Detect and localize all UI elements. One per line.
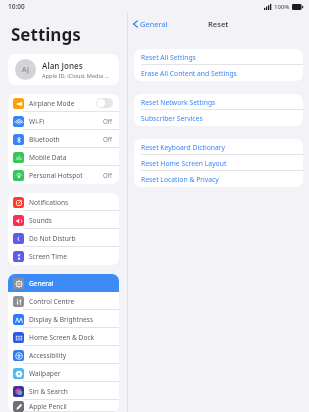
staticText: Erase All Content and Settings: [141, 69, 237, 78]
staticText: Display & Brightness: [29, 315, 113, 324]
staticText: Subscriber Services: [141, 114, 203, 123]
button[interactable]: Subscriber Services: [134, 110, 303, 126]
staticText: Airplane Mode: [29, 99, 96, 108]
staticText: AJ: [22, 65, 29, 75]
staticText: Settings: [11, 23, 81, 46]
button[interactable]: Mobile Data: [8, 148, 119, 166]
staticText: Siri & Search: [29, 387, 113, 396]
button[interactable]: Erase All Content and Settings: [134, 65, 303, 81]
staticText: Notifications: [29, 198, 113, 207]
button[interactable]: Wi-Fi: [8, 112, 119, 130]
button[interactable]: Sounds: [8, 211, 119, 229]
staticText: Sounds: [29, 216, 113, 225]
button[interactable]: Reset All Settings: [134, 49, 303, 65]
button[interactable]: Notifications: [8, 193, 119, 211]
staticText: Reset: [208, 19, 229, 29]
button[interactable]: Bluetooth: [8, 130, 119, 148]
button[interactable]: Control Centre: [8, 292, 119, 310]
button[interactable]: Display & Brightness: [8, 310, 119, 328]
staticText: Bluetooth: [29, 135, 103, 144]
button[interactable]: AJ: [8, 54, 119, 85]
button[interactable]: Wallpaper: [8, 364, 119, 382]
button[interactable]: Reset Keyboard Dictionary: [134, 139, 303, 155]
staticText: Screen Time: [29, 252, 113, 261]
staticText: Reset Keyboard Dictionary: [141, 143, 226, 152]
button[interactable]: Siri & Search: [8, 382, 119, 400]
staticText: Reset Location & Privacy: [141, 175, 219, 184]
button[interactable]: Accessibility: [8, 346, 119, 364]
button[interactable]: General: [8, 274, 119, 292]
button[interactable]: Reset Network Settings: [134, 94, 303, 110]
staticText: Reset All Settings: [141, 53, 196, 62]
staticText: Wi-Fi: [29, 117, 103, 126]
staticText: Accessibility: [29, 351, 113, 360]
staticText: Apple Pencil: [29, 402, 113, 411]
button[interactable]: Airplane Mode: [8, 94, 119, 112]
staticText: General: [140, 19, 168, 29]
button[interactable]: Reset Location & Privacy: [134, 171, 303, 187]
staticText: Mobile Data: [29, 153, 113, 162]
staticText: 100%: [274, 3, 290, 11]
button[interactable]: Airplane Mode toggle: [96, 98, 113, 108]
staticText: Home Screen & Dock: [29, 333, 113, 342]
staticText: Reset Home Screen Layout: [141, 159, 227, 168]
staticText: Apple ID, iCloud, Media &...: [42, 72, 112, 80]
button[interactable]: Apple Pencil: [8, 400, 119, 412]
button[interactable]: General: [133, 19, 168, 29]
staticText: Control Centre: [29, 297, 113, 306]
staticText: Off: [103, 171, 113, 179]
staticText: Personal Hotspot: [29, 171, 103, 180]
staticText: Wallpaper: [29, 369, 113, 378]
staticText: 10:00: [8, 2, 25, 11]
staticText: Alan Jones: [42, 60, 83, 71]
staticText: Reset Network Settings: [141, 98, 216, 107]
button[interactable]: Screen Time: [8, 247, 119, 265]
staticText: General: [29, 279, 113, 288]
staticText: Do Not Disturb: [29, 234, 113, 243]
staticText: Off: [103, 117, 113, 125]
button[interactable]: Personal Hotspot: [8, 166, 119, 184]
button[interactable]: Home Screen & Dock: [8, 328, 119, 346]
staticText: Off: [103, 135, 113, 143]
button[interactable]: Reset Home Screen Layout: [134, 155, 303, 171]
button[interactable]: Do Not Disturb: [8, 229, 119, 247]
